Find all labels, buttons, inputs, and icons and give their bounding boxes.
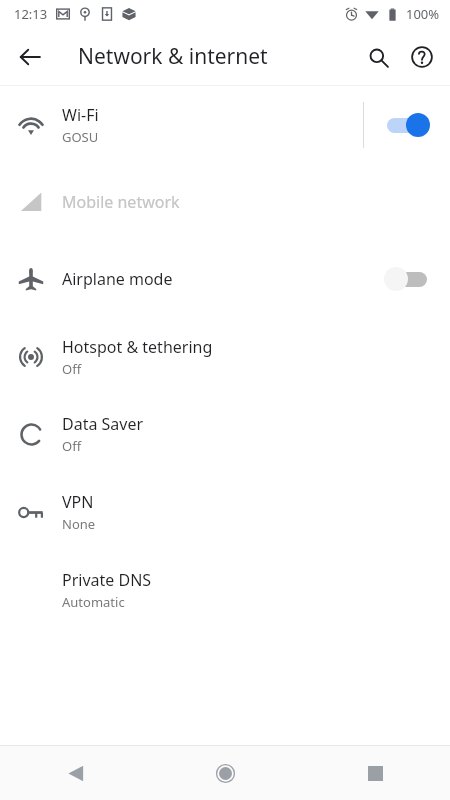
staticText: Wi-Fi <box>62 104 99 126</box>
staticText: Network & internet <box>78 42 268 71</box>
button[interactable]: Data Saver <box>0 395 450 473</box>
button[interactable]: Private DNS <box>0 551 450 629</box>
staticText: Airplane mode <box>62 268 364 290</box>
button[interactable]: Mobile network <box>0 163 450 240</box>
button[interactable]: VPN <box>0 473 450 551</box>
button[interactable]: Back <box>0 746 150 800</box>
staticText: GOSU <box>62 128 99 146</box>
button[interactable]: Wi-Fi <box>0 86 450 163</box>
staticText: Data Saver <box>62 413 144 435</box>
staticText: Mobile network <box>62 191 180 213</box>
button[interactable]: Wi-Fi toggle <box>364 86 450 163</box>
button[interactable]: Help <box>400 35 444 79</box>
staticText: Private DNS <box>62 569 152 591</box>
staticText: VPN <box>62 491 94 513</box>
button[interactable]: Airplane mode <box>0 240 450 318</box>
staticText: Automatic <box>62 593 125 611</box>
button[interactable]: Recent apps <box>300 746 450 800</box>
staticText: 12:13 <box>14 5 48 23</box>
staticText: Hotspot & tethering <box>62 336 213 358</box>
button[interactable]: Home <box>150 746 300 800</box>
staticText: None <box>62 515 96 533</box>
other: Airplane mode toggle <box>364 240 450 318</box>
button[interactable]: Hotspot & tethering <box>0 318 450 395</box>
button[interactable]: Back <box>8 35 52 79</box>
staticText: Off <box>62 437 82 455</box>
staticText: 100% <box>406 5 440 23</box>
button[interactable]: Search <box>356 35 400 79</box>
staticText: Off <box>62 360 82 378</box>
